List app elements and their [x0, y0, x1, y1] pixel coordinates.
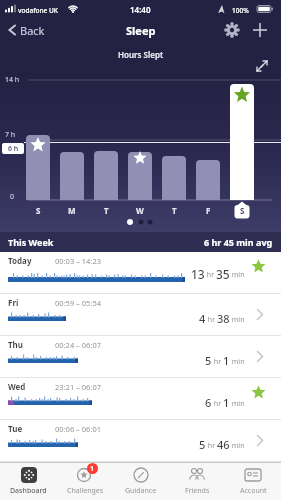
button[interactable]: Tue: [0, 420, 281, 462]
button[interactable]: [224, 22, 240, 38]
staticText: Wed: [8, 381, 26, 392]
staticText: Thu: [8, 339, 24, 350]
button[interactable]: Account: [225, 462, 281, 496]
staticText: 38: [217, 311, 230, 326]
staticText: Sleep: [126, 23, 156, 38]
staticText: Today: [8, 255, 32, 266]
staticText: 00:03 – 14:23: [55, 256, 101, 266]
staticText: 00:06 – 06:01: [55, 424, 101, 434]
staticText: 00:59 – 05:54: [55, 298, 101, 308]
button[interactable]: Fri: [0, 294, 281, 336]
staticText: hr: [212, 357, 223, 367]
staticText: hr: [206, 315, 217, 325]
staticText: 5: [199, 437, 206, 452]
staticText: W: [136, 205, 144, 216]
staticText: hr: [212, 399, 223, 409]
staticText: 14:40: [130, 4, 151, 15]
staticText: 5: [205, 353, 212, 368]
staticText: 6: [205, 395, 212, 410]
staticText: Dashboard: [10, 486, 47, 496]
staticText: 100%: [232, 6, 249, 15]
staticText: Hours Slept: [118, 49, 164, 60]
staticText: Back: [20, 23, 45, 38]
staticText: min: [230, 357, 245, 367]
staticText: Fri: [8, 297, 19, 308]
staticText: F: [206, 205, 211, 216]
staticText: Guidance: [125, 486, 157, 496]
staticText: hr: [206, 441, 217, 451]
staticText: 6 hr 45 min avg: [204, 236, 273, 248]
staticText: hr: [205, 270, 216, 280]
staticText: 13: [191, 266, 205, 282]
button[interactable]: Thu: [0, 336, 281, 378]
staticText: 46: [217, 437, 230, 452]
staticText: 23:21 – 06:07: [55, 382, 101, 392]
staticText: 7 h: [5, 130, 16, 140]
staticText: Account: [240, 486, 267, 496]
staticText: 00:24 – 06:07: [55, 340, 101, 350]
staticText: min: [230, 441, 245, 451]
button[interactable]: Guidance: [113, 462, 169, 496]
staticText: 6 h: [8, 144, 19, 154]
button[interactable]: Wed: [0, 378, 281, 420]
staticText: 1: [223, 353, 230, 368]
staticText: 1: [223, 395, 230, 410]
staticText: min: [230, 315, 245, 325]
staticText: S: [36, 205, 41, 216]
button[interactable]: [252, 22, 268, 38]
staticText: min: [230, 270, 245, 280]
staticText: T: [104, 205, 109, 216]
button[interactable]: Back: [6, 18, 45, 42]
staticText: min: [230, 399, 245, 409]
staticText: 14 h: [5, 75, 20, 85]
staticText: Challenges: [67, 486, 104, 496]
staticText: 0: [10, 192, 15, 202]
staticText: M: [68, 205, 76, 216]
button[interactable]: [254, 58, 270, 74]
button[interactable]: Dashboard: [0, 462, 57, 496]
staticText: vodafone UK: [18, 6, 58, 15]
button[interactable]: Friends: [169, 462, 225, 496]
staticText: S: [240, 205, 245, 216]
staticText: This Week: [8, 236, 54, 248]
button[interactable]: 1: [57, 462, 113, 496]
button[interactable]: Today: [0, 252, 281, 294]
staticText: 35: [216, 266, 230, 282]
staticText: 4: [199, 311, 206, 326]
staticText: Tue: [8, 423, 23, 434]
staticText: Friends: [185, 486, 210, 496]
staticText: T: [172, 205, 177, 216]
staticText: 1: [90, 464, 95, 474]
